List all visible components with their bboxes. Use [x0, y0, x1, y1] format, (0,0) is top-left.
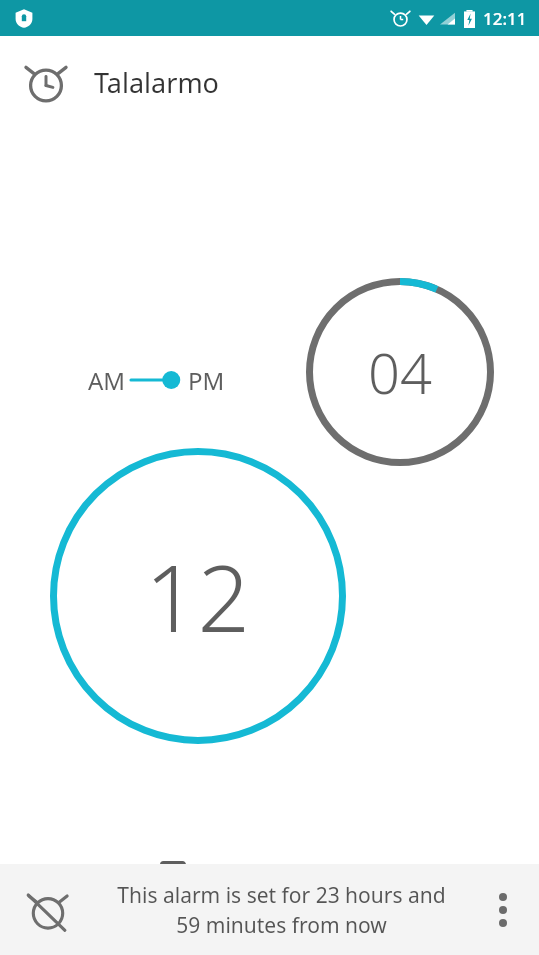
button[interactable]: This alarm is set for 23 hours and 59 mi…: [96, 864, 467, 955]
button[interactable]: AM: [88, 356, 225, 404]
button[interactable]: 12: [50, 448, 346, 744]
staticText: PM: [188, 364, 225, 397]
staticText: 12:11: [483, 7, 527, 30]
staticText: This alarm is set for 23 hours and 59 mi…: [104, 881, 459, 939]
staticText: 12: [145, 534, 251, 659]
button[interactable]: Advanced Repeat: [160, 850, 380, 898]
staticText: 04: [368, 334, 432, 410]
staticText: Advanced Repeat: [200, 859, 380, 889]
staticText: Talalarmo: [94, 64, 219, 101]
button[interactable]: Alarm off: [0, 864, 96, 955]
button[interactable]: Alarm: [0, 36, 539, 128]
button[interactable]: More options: [467, 864, 539, 955]
staticText: AM: [88, 364, 126, 397]
other: Alarm: [24, 60, 68, 104]
button[interactable]: 04: [306, 278, 494, 466]
